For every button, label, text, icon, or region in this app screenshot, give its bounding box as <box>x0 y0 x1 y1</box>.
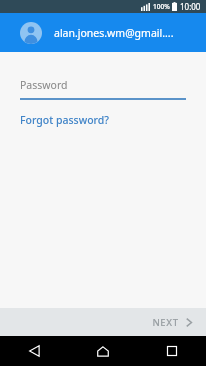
staticText: NEXT <box>152 316 179 329</box>
staticText: 10:00 <box>180 1 201 12</box>
staticText: Forgot password? <box>20 113 110 127</box>
button[interactable]: Home <box>68 336 137 366</box>
staticText: alan.jones.wm@gmail.... <box>54 26 174 40</box>
button[interactable]: Back <box>0 336 68 366</box>
button[interactable]: Forgot password? <box>20 113 110 127</box>
staticText: Password <box>20 78 68 92</box>
button[interactable]: Password <box>0 78 206 100</box>
button[interactable]: alan.jones.wm@gmail.... <box>0 13 206 52</box>
button[interactable]: Recent apps <box>137 336 206 366</box>
button[interactable]: NEXT <box>138 311 206 334</box>
staticText: 100% <box>153 2 170 11</box>
